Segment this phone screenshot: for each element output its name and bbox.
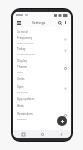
button[interactable]: Recent apps <box>13 130 33 138</box>
button[interactable]: More options <box>63 20 68 25</box>
staticText: Wi-Fi only <box>17 90 29 93</box>
staticText: Beta <box>17 104 24 108</box>
staticText: Reminders <box>17 112 33 116</box>
staticText: Display <box>17 59 28 63</box>
button[interactable]: Theme <box>13 63 71 74</box>
staticText: App updates <box>17 97 35 101</box>
staticText: Enabled <box>17 117 27 120</box>
button[interactable]: Sync <box>13 83 71 94</box>
staticText: Sync <box>17 85 24 89</box>
button[interactable]: Search <box>57 20 63 26</box>
staticText: Every 6 hours <box>17 41 33 44</box>
staticText: General <box>17 30 28 34</box>
button[interactable]: Reminders <box>13 110 71 121</box>
button[interactable]: Home <box>33 130 52 138</box>
button[interactable]: Today <box>13 45 71 56</box>
button[interactable]: Open navigation menu <box>16 20 22 26</box>
button[interactable]: Frequency <box>13 34 71 45</box>
button[interactable]: Beta <box>13 101 71 110</box>
staticText: Units <box>17 77 25 81</box>
button[interactable]: Add <box>57 116 67 126</box>
staticText: Light <box>17 70 23 73</box>
button[interactable]: Back <box>52 130 71 138</box>
staticText: Theme <box>17 65 28 69</box>
button[interactable]: Units <box>13 74 71 83</box>
staticText: Settings <box>32 20 46 25</box>
staticText: Show summary <box>17 52 36 55</box>
staticText: Frequency <box>17 36 33 40</box>
staticText: Today <box>17 47 26 51</box>
